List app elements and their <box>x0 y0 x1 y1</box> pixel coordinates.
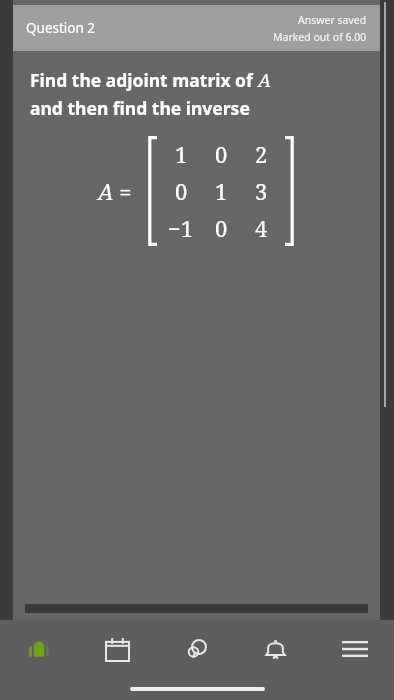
staticText: 0 <box>215 139 228 169</box>
button[interactable]: Calendar <box>78 620 157 678</box>
staticText: 0 <box>215 213 228 243</box>
button[interactable]: Home <box>0 620 78 678</box>
staticText: and then find the inverse <box>30 96 250 120</box>
button[interactable]: More <box>315 620 394 678</box>
staticText: A <box>258 67 272 92</box>
button[interactable]: Question 2 <box>13 5 380 51</box>
staticText: 4 <box>255 213 268 243</box>
staticText: Marked out of 6.00 <box>273 30 367 44</box>
staticText: 1 <box>175 139 188 169</box>
button[interactable]: Messages <box>157 620 236 678</box>
staticText: 1 <box>215 176 228 206</box>
staticText: Question 2 <box>26 19 96 37</box>
staticText: 3 <box>255 176 268 206</box>
staticText: 0 <box>175 176 188 206</box>
button[interactable]: Notifications <box>236 620 315 678</box>
staticText: 2 <box>255 139 268 169</box>
staticText: Answer saved <box>298 13 367 27</box>
staticText: Find the adjoint matrix of <box>30 68 258 92</box>
staticText: −1 <box>168 213 194 243</box>
staticText: A = <box>98 176 132 206</box>
